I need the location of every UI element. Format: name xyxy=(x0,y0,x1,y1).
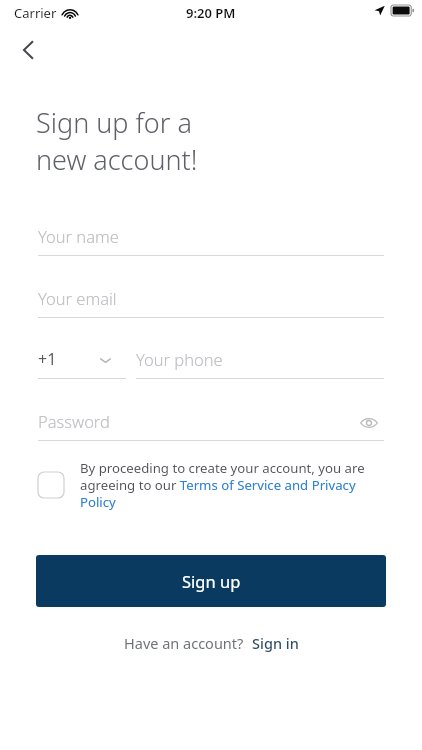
staticText: 9:20 PM xyxy=(186,4,236,22)
staticText: Your email xyxy=(38,287,117,309)
staticText: Sign up for a xyxy=(36,104,192,141)
staticText: Your phone xyxy=(136,348,223,370)
staticText: Password xyxy=(38,410,110,432)
staticText: Have an account? xyxy=(124,633,244,653)
button[interactable]: Select country code xyxy=(38,344,126,378)
button[interactable]: By proceeding to create your account, yo… xyxy=(80,459,372,511)
staticText: Sign in xyxy=(252,633,299,653)
button[interactable]: Your phone xyxy=(136,344,384,378)
staticText: Your name xyxy=(38,225,119,247)
staticText: new account! xyxy=(36,141,198,178)
staticText: +1 xyxy=(38,348,57,370)
button[interactable]: Password xyxy=(38,406,384,440)
staticText: Sign up xyxy=(182,570,241,592)
button[interactable]: Agree to terms and conditions xyxy=(38,472,64,498)
button[interactable]: Show password xyxy=(354,408,384,438)
button[interactable]: Your email xyxy=(38,283,384,317)
button[interactable]: Your name xyxy=(38,221,384,255)
button[interactable]: Sign in xyxy=(252,633,299,653)
button[interactable]: Sign up xyxy=(36,555,386,607)
staticText: Carrier xyxy=(14,4,57,22)
button[interactable]: Back xyxy=(8,29,50,71)
